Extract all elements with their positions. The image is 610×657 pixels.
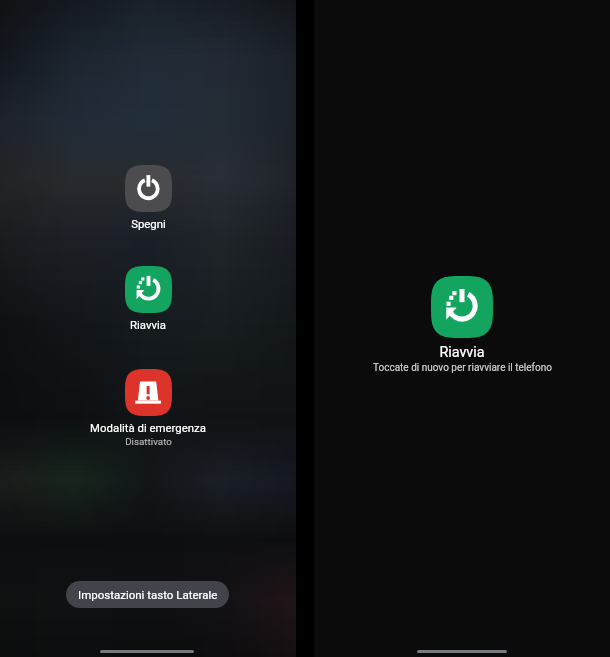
staticText: Toccate di nuovo per riavviare il telefo… — [373, 362, 552, 374]
button[interactable]: Riavvia — [125, 266, 172, 313]
button[interactable]: Impostazioni tasto Laterale — [66, 581, 229, 608]
staticText: Riavvia — [439, 344, 485, 361]
staticText: Disattivato — [125, 436, 172, 447]
button[interactable]: Spegni — [125, 165, 172, 212]
staticText: Impostazioni tasto Laterale — [78, 588, 218, 601]
staticText: Spegni — [131, 217, 166, 230]
staticText: Modalità di emergenza — [90, 421, 206, 434]
button[interactable]: Modalità di emergenza — [125, 369, 172, 416]
staticText: Riavvia — [130, 318, 166, 331]
button[interactable]: Riavvia — [431, 276, 493, 338]
